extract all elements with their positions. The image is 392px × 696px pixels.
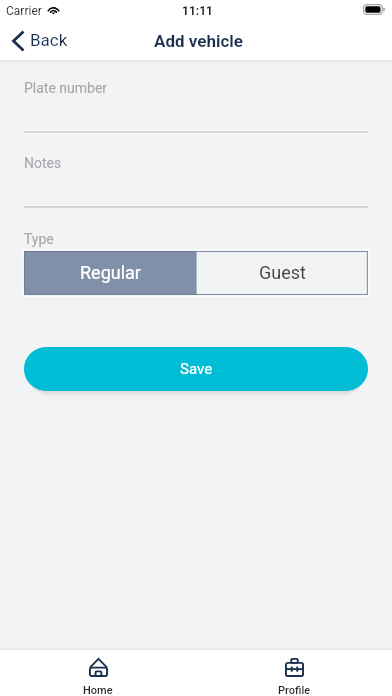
staticText: Add vehicle: [154, 31, 244, 51]
staticText: 11:11: [182, 4, 213, 18]
button[interactable]: Home tab: [0, 650, 196, 696]
staticText: Home: [83, 684, 113, 696]
button[interactable]: Back: [0, 22, 80, 60]
staticText: Type: [24, 231, 54, 247]
button[interactable]: Profile tab: [196, 650, 392, 696]
staticText: Notes: [24, 155, 62, 171]
staticText: Regular: [80, 262, 141, 283]
button[interactable]: Guest: [196, 251, 368, 295]
button[interactable]: Regular: [24, 251, 196, 295]
staticText: Back: [30, 30, 68, 50]
button[interactable]: Save: [24, 347, 368, 391]
staticText: Guest: [259, 262, 306, 283]
staticText: Save: [180, 360, 213, 378]
staticText: Carrier: [6, 4, 42, 18]
staticText: Profile: [278, 684, 311, 696]
other: Wi-Fi: [47, 5, 60, 14]
staticText: Plate number: [24, 80, 108, 96]
other: Battery full: [363, 4, 385, 15]
